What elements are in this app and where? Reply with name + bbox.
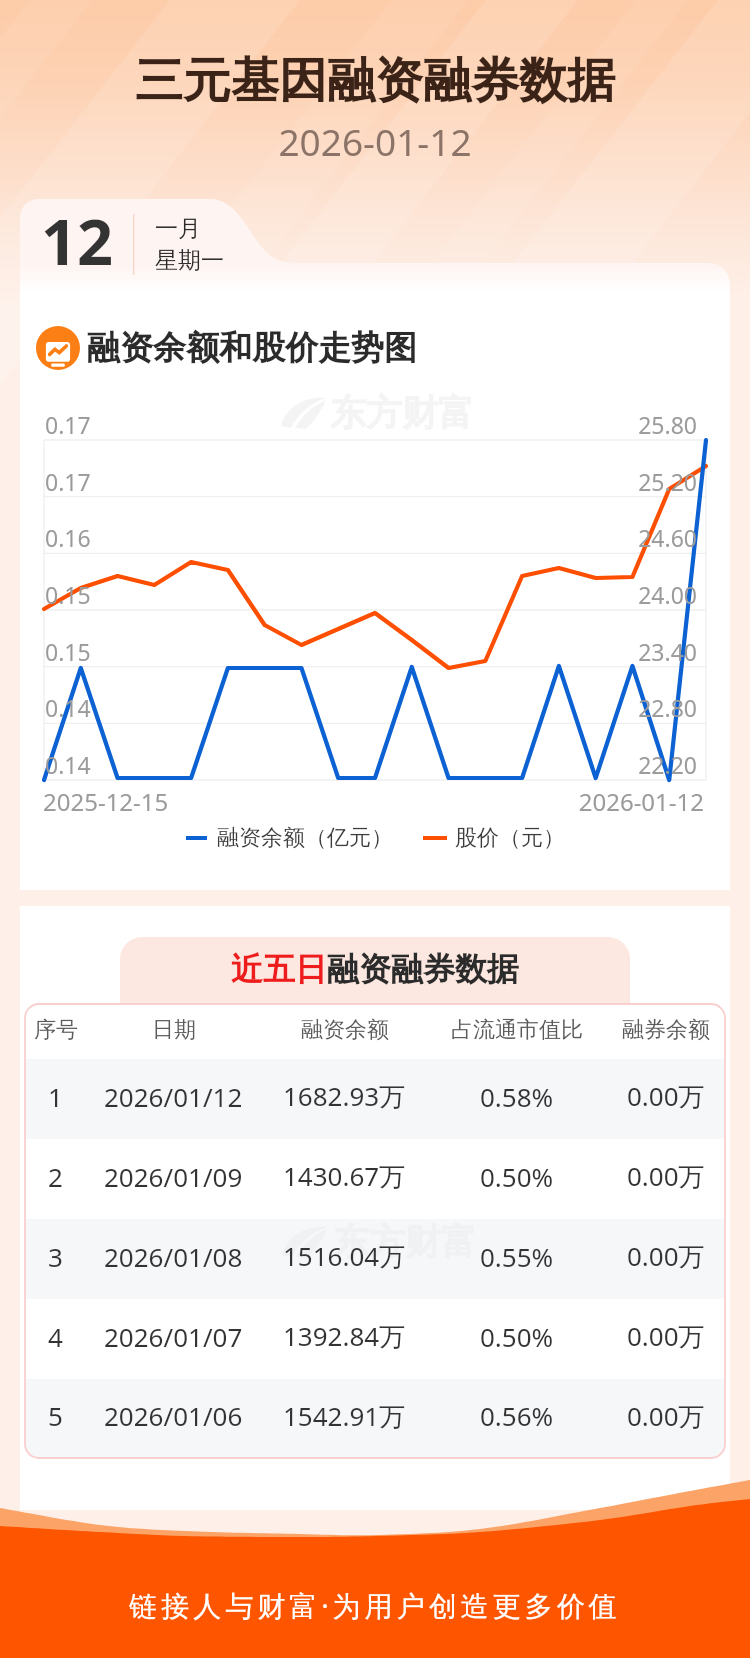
staticText: 3: [48, 1239, 63, 1274]
staticText: 2026-01-12: [578, 785, 704, 818]
button[interactable]: 走势图: [36, 326, 417, 370]
staticText: 融资余额（亿元）: [217, 824, 393, 852]
other: 走势图: [36, 326, 80, 370]
staticText: 4: [48, 1319, 63, 1354]
staticText: 2026-01-12: [0, 116, 750, 166]
staticText: 0.00万: [627, 1318, 705, 1354]
staticText: 0.17: [45, 409, 91, 440]
staticText: 1682.93万: [283, 1078, 406, 1114]
staticText: 0.50%: [480, 1319, 554, 1354]
staticText: 星期一: [155, 246, 224, 275]
staticText: 0.15: [45, 579, 91, 610]
staticText: 1430.67万: [283, 1158, 406, 1194]
staticText: 0.58%: [480, 1079, 554, 1114]
staticText: 融资余额和股价走势图: [87, 327, 417, 369]
staticText: 0.00万: [627, 1078, 705, 1114]
staticText: 0.17: [45, 466, 91, 497]
staticText: 2026/01/12: [104, 1079, 243, 1114]
staticText: 1: [48, 1079, 63, 1114]
staticText: 23.40: [638, 636, 697, 667]
staticText: 0.00万: [627, 1398, 705, 1434]
staticText: 融资余额: [301, 1016, 389, 1044]
button[interactable]: 4: [25, 1299, 725, 1379]
staticText: 2: [48, 1159, 63, 1194]
staticText: 1516.04万: [283, 1238, 406, 1274]
staticText: 占流通市值比: [451, 1016, 583, 1044]
staticText: 0.00万: [627, 1238, 705, 1274]
staticText: 0.50%: [480, 1159, 554, 1194]
staticText: 链接人与财富·为用户创造更多价值: [0, 1586, 750, 1624]
staticText: 12: [41, 198, 114, 284]
staticText: 近五日: [231, 949, 327, 989]
staticText: 0.00万: [627, 1158, 705, 1194]
staticText: 0.14: [45, 692, 91, 723]
staticText: 2026/01/08: [104, 1239, 243, 1274]
staticText: 序号: [34, 1016, 78, 1044]
button[interactable]: 3: [25, 1219, 725, 1299]
button[interactable]: 2: [25, 1139, 725, 1219]
staticText: 一月: [155, 214, 201, 243]
staticText: 0.55%: [480, 1239, 554, 1274]
staticText: 24.00: [638, 579, 697, 610]
staticText: 22.80: [638, 692, 697, 723]
staticText: 东方财富: [330, 390, 474, 435]
staticText: 24.60: [638, 522, 697, 553]
staticText: 三元基因融资融券数据: [0, 51, 750, 111]
button[interactable]: [44, 206, 244, 278]
button[interactable]: 5: [25, 1379, 725, 1458]
staticText: 25.80: [638, 409, 697, 440]
staticText: 0.14: [45, 749, 91, 780]
staticText: 22.20: [638, 749, 697, 780]
staticText: 东方财富: [333, 1219, 477, 1264]
staticText: 1392.84万: [283, 1318, 406, 1354]
staticText: 日期: [152, 1016, 196, 1044]
staticText: 1542.91万: [283, 1398, 406, 1434]
staticText: 0.56%: [480, 1398, 554, 1433]
staticText: 25.20: [638, 466, 697, 497]
staticText: 0.16: [45, 522, 91, 553]
button[interactable]: 1: [25, 1059, 725, 1139]
staticText: 2026/01/06: [104, 1398, 243, 1433]
staticText: 0.15: [45, 636, 91, 667]
staticText: 股价（元）: [455, 824, 565, 852]
staticText: 2026/01/07: [104, 1319, 243, 1354]
staticText: 2025-12-15: [43, 785, 169, 818]
staticText: 5: [48, 1398, 63, 1433]
staticText: 2026/01/09: [104, 1159, 243, 1194]
staticText: 融资融券数据: [327, 949, 519, 989]
button[interactable]: 近五日: [120, 937, 630, 1004]
staticText: 融券余额: [622, 1016, 710, 1044]
